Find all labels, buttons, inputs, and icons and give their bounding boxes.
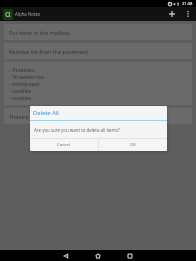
staticText: α: [5, 9, 11, 18]
button[interactable]: Back: [52, 250, 80, 261]
staticText: - cookies: [9, 94, 32, 101]
button[interactable]: OK: [99, 139, 167, 151]
staticText: OK: [130, 142, 136, 148]
staticText: Cancel: [57, 142, 71, 148]
staticText: Delete All: [33, 109, 59, 117]
button[interactable]: Put letter in the mailbox: [4, 24, 192, 40]
button[interactable]: Remove ice from the pavement: [4, 43, 192, 59]
staticText: - candles: [9, 87, 32, 94]
staticText: - Potatoes: [9, 66, 35, 73]
button[interactable]: Add note: [165, 7, 179, 21]
staticText: Put letter in the mailbox: [9, 29, 70, 36]
staticText: - toiletpaper: [9, 80, 41, 87]
staticText: Remove ice from the pavement: [9, 48, 89, 55]
staticText: 21:38: [182, 1, 193, 7]
button[interactable]: Home: [80, 250, 116, 261]
staticText: - Strawberries: [9, 73, 45, 80]
button[interactable]: Theatre: [4, 108, 192, 124]
staticText: Alpha Notes: [15, 11, 41, 17]
button[interactable]: More options: [181, 7, 195, 21]
button[interactable]: Recent apps: [116, 250, 144, 261]
staticText: Are you sure you want to delete all item…: [34, 127, 120, 133]
button[interactable]: - Potatoes: [4, 62, 192, 105]
button[interactable]: Alpha Notes logo: [3, 9, 13, 20]
button[interactable]: Cancel: [30, 139, 98, 151]
staticText: Theatre: [9, 113, 29, 120]
